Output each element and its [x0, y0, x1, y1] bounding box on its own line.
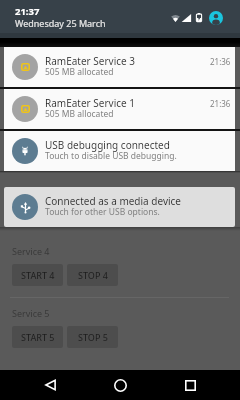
button[interactable]: START 5 [12, 326, 63, 348]
staticText: 21:36 [210, 56, 231, 67]
button[interactable]: START 4 [12, 264, 63, 286]
button[interactable]: RamEater Service 3 [4, 47, 235, 87]
staticText: Connected as a media device [45, 194, 181, 208]
button[interactable]: USB debugging connected [4, 131, 235, 171]
button[interactable]: STOP 4 [67, 264, 118, 286]
button[interactable]: RamEater Service 1 [4, 89, 235, 129]
staticText: START 4 [21, 269, 55, 281]
staticText: START 5 [21, 331, 55, 343]
staticText: USB debugging connected [45, 138, 170, 152]
staticText: Touch for other USB options. [45, 206, 160, 218]
staticText: 21:37 [15, 5, 40, 18]
staticText: STOP 5 [78, 331, 108, 343]
button[interactable]: User account [209, 11, 223, 25]
staticText: 505 MB allocated [45, 66, 114, 78]
staticText: RamEater Service 1 [45, 96, 136, 110]
staticText: 505 MB allocated [45, 108, 114, 120]
button[interactable]: STOP 5 [67, 326, 118, 348]
staticText: Touch to disable USB debugging. [45, 150, 177, 162]
button[interactable]: Home [100, 370, 140, 400]
button[interactable]: Back [30, 370, 70, 400]
staticText: Service 5 [12, 307, 50, 319]
staticText: STOP 4 [78, 269, 108, 281]
button[interactable]: Connected as a media device [4, 187, 235, 227]
button[interactable]: Recent apps [170, 370, 210, 400]
staticText: 21:36 [210, 98, 231, 109]
staticText: Wednesday 25 March [15, 17, 106, 29]
staticText: Service 4 [12, 245, 50, 257]
staticText: RamEater Service 3 [45, 54, 136, 68]
